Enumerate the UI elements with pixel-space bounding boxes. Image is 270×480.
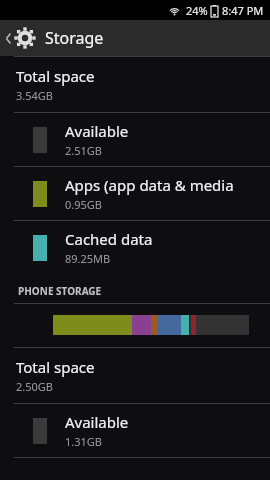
button[interactable]: Total space xyxy=(0,57,270,112)
button[interactable]: Storage xyxy=(0,20,270,56)
staticText: Total space xyxy=(16,66,95,86)
button[interactable]: Available xyxy=(0,113,270,166)
staticText: Cached data xyxy=(65,229,153,249)
staticText: 24% xyxy=(186,3,208,18)
staticText: 1.31GB xyxy=(65,434,102,449)
staticText: Available xyxy=(65,121,129,141)
staticText: PHONE STORAGE xyxy=(18,284,102,298)
staticText: Available xyxy=(65,412,129,432)
staticText: 8:47 PM xyxy=(222,3,264,18)
staticText: 3.54GB xyxy=(16,88,53,103)
staticText: Total space xyxy=(16,357,95,377)
button[interactable]: Available xyxy=(0,404,270,457)
staticText: 2.51GB xyxy=(65,143,102,158)
button[interactable]: Cached data xyxy=(0,221,270,274)
button[interactable]: Total space xyxy=(0,348,270,403)
button[interactable]: Apps (app data & media xyxy=(0,167,270,220)
staticText: 0.95GB xyxy=(65,197,102,212)
staticText: 89.25MB xyxy=(65,251,111,266)
staticText: Storage xyxy=(45,27,104,49)
staticText: Apps (app data & media xyxy=(65,175,234,195)
staticText: 2.50GB xyxy=(16,379,53,394)
